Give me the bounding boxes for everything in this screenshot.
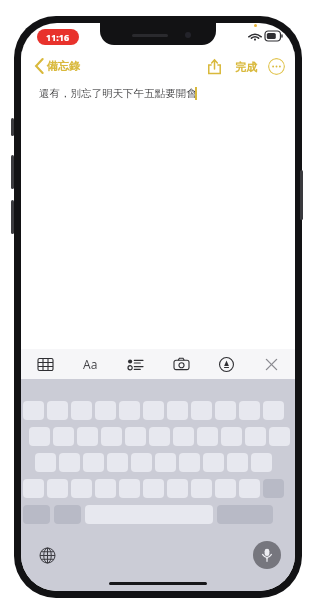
button[interactable]: Key: [119, 401, 140, 420]
staticText: 完成: [235, 60, 257, 74]
staticText: 還有，別忘了明天下午五點要開會: [39, 87, 197, 100]
button[interactable]: Key: [167, 479, 188, 498]
button[interactable]: Key: [23, 401, 44, 420]
button[interactable]: Share: [205, 56, 224, 77]
button[interactable]: Key: [95, 479, 116, 498]
button[interactable]: Key: [155, 453, 176, 472]
button[interactable]: Key: [47, 401, 68, 420]
button[interactable]: Key: [215, 479, 236, 498]
button[interactable]: Key: [59, 453, 80, 472]
button[interactable]: Key: [101, 427, 122, 446]
button[interactable]: Key: [239, 401, 260, 420]
button[interactable]: Key: [251, 453, 272, 472]
button[interactable]: Key: [143, 401, 164, 420]
button[interactable]: Key: [53, 427, 74, 446]
button[interactable]: More options: [268, 58, 285, 75]
button[interactable]: Key: [203, 453, 224, 472]
button[interactable]: Key: [71, 401, 92, 420]
button[interactable]: Table: [35, 354, 55, 374]
button[interactable]: Change keyboard: [37, 545, 57, 565]
button[interactable]: 完成: [232, 57, 260, 77]
button[interactable]: Key: [173, 427, 194, 446]
button[interactable]: Key: [35, 453, 56, 472]
button[interactable]: Camera: [171, 354, 191, 374]
button[interactable]: Key: [143, 479, 164, 498]
button[interactable]: Key: [23, 479, 44, 498]
button[interactable]: Text format: [80, 354, 100, 374]
button[interactable]: Key: [131, 453, 152, 472]
button[interactable]: Key: [29, 427, 50, 446]
button[interactable]: Key: [221, 427, 242, 446]
button[interactable]: Close keyboard: [261, 354, 281, 374]
button[interactable]: 備忘錄: [31, 55, 84, 77]
button[interactable]: Key: [191, 479, 212, 498]
button[interactable]: Dictate: [253, 541, 281, 569]
button[interactable]: Key: [71, 479, 92, 498]
button[interactable]: Checklist: [125, 354, 145, 374]
button[interactable]: Key: [179, 453, 200, 472]
button[interactable]: Key: [191, 401, 212, 420]
button[interactable]: Key: [167, 401, 188, 420]
button[interactable]: Key: [107, 453, 128, 472]
button[interactable]: Key: [269, 427, 290, 446]
button[interactable]: Key: [149, 427, 170, 446]
button[interactable]: Key: [263, 401, 284, 420]
button[interactable]: Key: [77, 427, 98, 446]
button[interactable]: Key: [125, 427, 146, 446]
button[interactable]: Key: [215, 401, 236, 420]
button[interactable]: Key: [239, 479, 260, 498]
staticText: 11:16: [46, 31, 70, 43]
button[interactable]: Markup: [216, 354, 236, 374]
button[interactable]: Key: [47, 479, 68, 498]
button[interactable]: Key: [197, 427, 218, 446]
staticText: 備忘錄: [47, 59, 80, 73]
button[interactable]: Key: [95, 401, 116, 420]
button[interactable]: 還有，別忘了明天下午五點要開會: [21, 81, 295, 349]
button[interactable]: Key: [245, 427, 266, 446]
button[interactable]: Key: [227, 453, 248, 472]
staticText: Aa: [83, 356, 98, 372]
button[interactable]: Key: [119, 479, 140, 498]
button[interactable]: Key: [83, 453, 104, 472]
